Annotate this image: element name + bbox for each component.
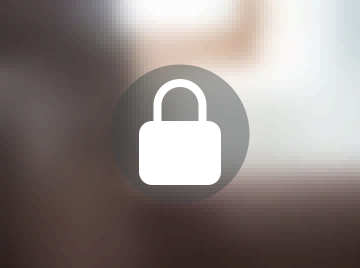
- button[interactable]: Locked content: [110, 64, 249, 203]
